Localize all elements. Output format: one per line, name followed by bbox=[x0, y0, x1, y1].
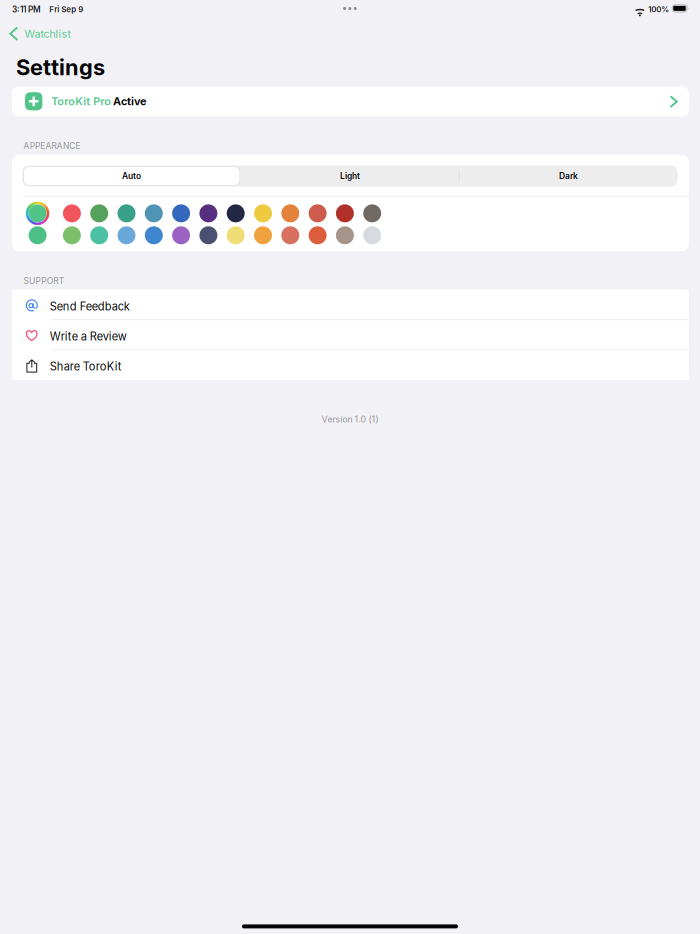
button[interactable]: Accent colour light 1 bbox=[29, 204, 47, 222]
button[interactable]: Accent colour light 9 bbox=[254, 204, 272, 222]
button[interactable]: Accent colour dark 4 bbox=[117, 226, 135, 244]
button[interactable]: Accent colour dark 8 bbox=[227, 226, 245, 244]
button[interactable]: Accent colour light 6 bbox=[172, 204, 190, 222]
staticText: Watchlist bbox=[24, 27, 70, 40]
staticText: Dark bbox=[559, 171, 578, 181]
button[interactable]: Accent colour dark 3 bbox=[90, 226, 108, 244]
button[interactable]: Share ToroKit bbox=[12, 350, 689, 380]
button[interactable]: Accent colour light 4 bbox=[117, 204, 135, 222]
button[interactable]: Dark bbox=[459, 165, 678, 186]
button[interactable]: Watchlist bbox=[8, 23, 78, 43]
button[interactable]: Auto bbox=[22, 165, 241, 186]
button[interactable]: Accent colour light 5 bbox=[145, 204, 163, 222]
button[interactable]: Accent colour dark 6 bbox=[172, 226, 190, 244]
button[interactable]: Accent colour dark 11 bbox=[309, 226, 327, 244]
button[interactable]: Accent colour light 3 bbox=[90, 204, 108, 222]
staticText: APPEARANCE bbox=[23, 141, 80, 151]
button[interactable]: ToroKit Pro bbox=[12, 86, 689, 116]
staticText: SUPPORT bbox=[23, 276, 64, 286]
button[interactable]: Accent colour dark 1 bbox=[29, 226, 47, 244]
staticText: Settings bbox=[16, 54, 105, 80]
button[interactable]: Accent colour light 11 bbox=[309, 204, 327, 222]
button[interactable]: Accent colour dark 5 bbox=[145, 226, 163, 244]
staticText: Write a Review bbox=[50, 330, 127, 343]
staticText: 100% bbox=[648, 5, 669, 14]
button[interactable]: Accent colour dark 9 bbox=[254, 226, 272, 244]
staticText: Light bbox=[340, 171, 360, 181]
staticText: 3:11 PM bbox=[12, 5, 41, 15]
button[interactable]: Write a Review bbox=[12, 320, 689, 350]
button[interactable]: Accent colour light 2 bbox=[63, 204, 81, 222]
button[interactable]: Light bbox=[241, 165, 459, 186]
button[interactable]: Accent colour dark 10 bbox=[281, 226, 299, 244]
staticText: Fri Sep 9 bbox=[49, 5, 83, 14]
staticText: ToroKit Pro bbox=[51, 95, 111, 108]
button[interactable]: Accent colour light 10 bbox=[281, 204, 299, 222]
button[interactable]: Accent colour dark 7 bbox=[199, 226, 217, 244]
button[interactable]: Send Feedback bbox=[12, 290, 689, 320]
button[interactable]: Accent colour dark 12 bbox=[336, 226, 354, 244]
button[interactable]: Accent colour dark 2 bbox=[63, 226, 81, 244]
button[interactable]: Accent colour light 12 bbox=[336, 204, 354, 222]
staticText: Send Feedback bbox=[50, 300, 130, 313]
staticText: Version 1.0 (1) bbox=[321, 414, 378, 425]
staticText: Active bbox=[113, 95, 146, 108]
staticText: Share ToroKit bbox=[50, 360, 122, 373]
button[interactable]: Accent colour light 8 bbox=[227, 204, 245, 222]
button[interactable]: Accent colour dark 13 bbox=[363, 226, 381, 244]
button[interactable]: Accent colour light 13 bbox=[363, 204, 381, 222]
button[interactable]: Accent colour light 7 bbox=[199, 204, 217, 222]
staticText: Auto bbox=[122, 171, 141, 181]
